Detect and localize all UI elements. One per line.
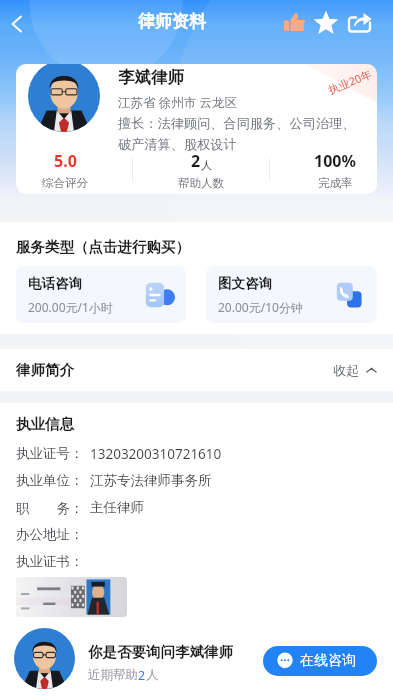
staticText: 完成率: [318, 176, 353, 190]
staticText: 职 务：: [16, 499, 84, 517]
staticText: 帮助人数: [178, 176, 224, 190]
button[interactable]: 电话咨询: [16, 266, 186, 323]
staticText: 执业单位：: [16, 472, 84, 489]
staticText: 电话咨询: [28, 275, 82, 292]
staticText: 人: [146, 667, 159, 683]
staticText: 综合评分: [42, 176, 88, 190]
staticText: 近期帮助: [88, 667, 138, 683]
staticText: 200.00元/1小时: [28, 299, 113, 315]
staticText: 李斌律师: [118, 67, 184, 88]
staticText: 2: [138, 667, 146, 684]
staticText: 擅长：法律顾问、合同服务、公司治理、: [118, 115, 356, 132]
staticText: 江苏专法律师事务所: [90, 472, 212, 489]
staticText: 2: [191, 150, 201, 172]
staticText: 办公地址：: [16, 526, 84, 543]
staticText: 13203200310721610: [90, 445, 222, 463]
staticText: 收起: [333, 362, 359, 378]
staticText: 江苏省 徐州市 云龙区: [118, 94, 238, 111]
button[interactable]: Favorite: [312, 9, 339, 36]
staticText: 破产清算、股权设计: [118, 136, 237, 153]
staticText: 20.00元/10分钟: [218, 299, 303, 315]
staticText: 图文咨询: [218, 275, 272, 292]
button[interactable]: 律师简介: [0, 349, 393, 391]
button[interactable]: License photo: [16, 577, 127, 617]
staticText: 你是否要询问李斌律师: [88, 643, 233, 661]
staticText: 人: [201, 158, 212, 172]
button[interactable]: 在线咨询: [263, 646, 377, 676]
button[interactable]: Share: [346, 9, 373, 36]
button[interactable]: 图文咨询: [206, 266, 377, 323]
button[interactable]: Back: [0, 4, 37, 44]
staticText: 执业20年: [326, 66, 374, 97]
staticText: 执业证书：: [16, 553, 84, 570]
staticText: 执业证号：: [16, 445, 84, 462]
staticText: 5.0: [54, 150, 77, 172]
staticText: 服务类型（点击进行购买）: [16, 238, 190, 256]
staticText: 100%: [314, 150, 356, 172]
staticText: 执业信息: [16, 415, 74, 433]
button[interactable]: Like: [281, 9, 307, 35]
staticText: 律师资料: [138, 11, 206, 32]
staticText: 主任律师: [90, 499, 144, 516]
staticText: 在线咨询: [300, 652, 356, 670]
staticText: 律师简介: [16, 361, 74, 379]
